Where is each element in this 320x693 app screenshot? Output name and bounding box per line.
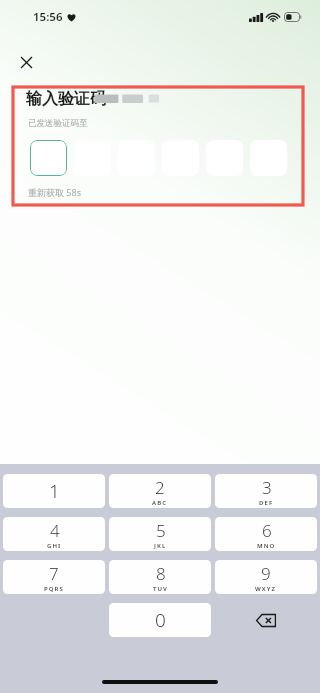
button[interactable]: 0 <box>109 603 211 637</box>
button[interactable]: 5 <box>109 517 211 551</box>
button[interactable]: 4 <box>3 517 105 551</box>
staticText: 8 <box>156 562 166 585</box>
button[interactable]: Code digit 1 <box>30 140 67 176</box>
staticText: ABC <box>152 499 168 507</box>
staticText: TUV <box>153 585 168 593</box>
staticText: 7 <box>49 562 59 585</box>
button[interactable]: 2 <box>109 474 211 508</box>
staticText: JKL <box>154 542 167 550</box>
button[interactable]: 6 <box>215 517 317 551</box>
staticText: DEF <box>259 499 274 507</box>
button[interactable]: 7 <box>3 560 105 594</box>
button[interactable]: 3 <box>215 474 317 508</box>
staticText: 输入验证码 <box>26 89 106 109</box>
staticText: PQRS <box>44 585 64 593</box>
staticText: 3 <box>262 476 272 499</box>
button[interactable]: 8 <box>109 560 211 594</box>
staticText: 9 <box>261 562 271 585</box>
staticText: 5 <box>156 519 166 542</box>
button[interactable]: Delete <box>215 603 317 637</box>
staticText: 1 <box>49 478 60 504</box>
staticText: 15:56 <box>33 9 63 25</box>
staticText: 重新获取 58s <box>28 186 81 198</box>
staticText: 0 <box>155 607 166 633</box>
button[interactable]: 9 <box>215 560 317 594</box>
staticText: MNO <box>257 542 276 550</box>
staticText: WXYZ <box>255 585 277 593</box>
button[interactable]: Close <box>13 49 39 75</box>
staticText: 2 <box>155 476 165 499</box>
staticText: 已发送验证码至 <box>28 118 88 129</box>
staticText: 4 <box>50 519 60 542</box>
staticText: 6 <box>262 519 272 542</box>
staticText: GHI <box>47 542 62 550</box>
button[interactable]: 1 <box>3 474 105 508</box>
